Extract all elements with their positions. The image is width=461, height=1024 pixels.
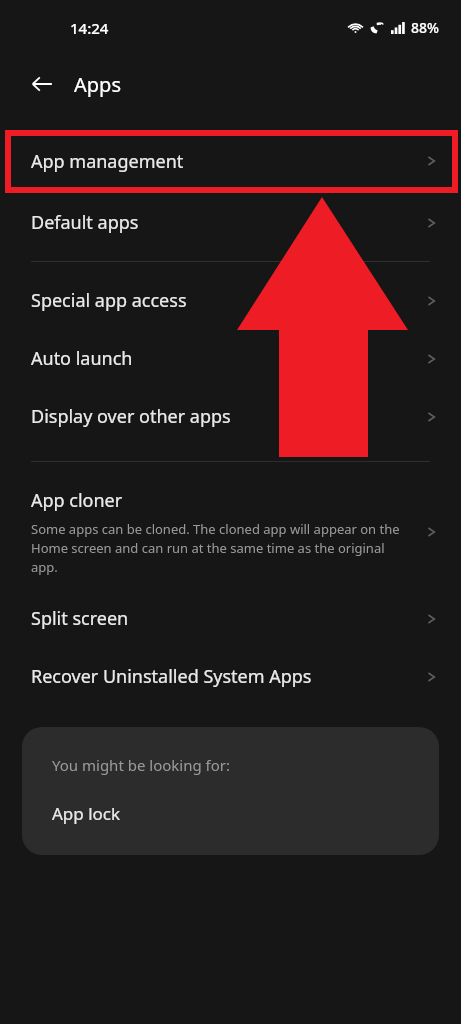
staticText: Apps xyxy=(74,71,121,98)
button[interactable]: App management xyxy=(0,130,461,192)
staticText: You might be looking for: xyxy=(52,755,231,775)
staticText: Display over other apps xyxy=(31,404,231,429)
staticText: Recover Uninstalled System Apps xyxy=(31,664,312,689)
button[interactable]: App cloner xyxy=(0,468,461,590)
staticText: Auto launch xyxy=(31,346,133,371)
staticText: Split screen xyxy=(31,606,129,631)
staticText: App cloner xyxy=(31,488,123,513)
button[interactable]: Back xyxy=(22,64,62,104)
staticText: App lock xyxy=(52,802,121,825)
button[interactable]: Auto launch xyxy=(0,333,461,391)
button[interactable]: Special app access xyxy=(0,268,461,333)
staticText: Some apps can be cloned. The cloned app … xyxy=(31,520,409,576)
button[interactable]: Recover Uninstalled System Apps xyxy=(0,651,461,709)
button[interactable]: Default apps xyxy=(0,192,461,255)
staticText: Special app access xyxy=(31,288,187,313)
staticText: 14:24 xyxy=(70,18,109,38)
staticText: App management xyxy=(31,149,423,174)
button[interactable]: You might be looking for: xyxy=(22,727,439,855)
staticText: 88% xyxy=(411,18,439,37)
staticText: Default apps xyxy=(31,210,139,235)
button[interactable]: Display over other apps xyxy=(0,391,461,449)
button[interactable]: Split screen xyxy=(0,590,461,651)
